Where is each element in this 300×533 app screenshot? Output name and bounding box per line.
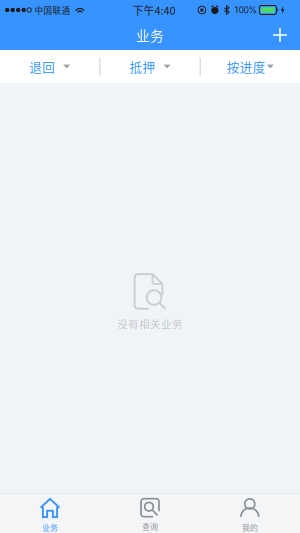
staticText: 抵押 [129,57,155,75]
button[interactable]: 新增 [263,20,297,50]
staticText: 退回 [29,57,55,75]
button[interactable]: 我的 [200,494,300,533]
button[interactable]: 退回 [0,50,99,83]
staticText: 查询 [142,520,158,532]
staticText: 业务 [136,25,164,45]
button[interactable]: 业务 [0,494,100,533]
staticText: 中国联通 [34,4,70,16]
button[interactable]: 抵押 [100,50,200,83]
button[interactable]: 按进度 [201,50,300,83]
staticText: 我的 [242,521,258,533]
staticText: 没有相关业务 [117,316,183,331]
button[interactable]: 查询 [100,494,200,533]
staticText: 业务 [42,521,58,533]
staticText: 下午4:40 [132,2,175,18]
staticText: 按进度 [227,57,266,75]
staticText: 100% [234,5,257,15]
